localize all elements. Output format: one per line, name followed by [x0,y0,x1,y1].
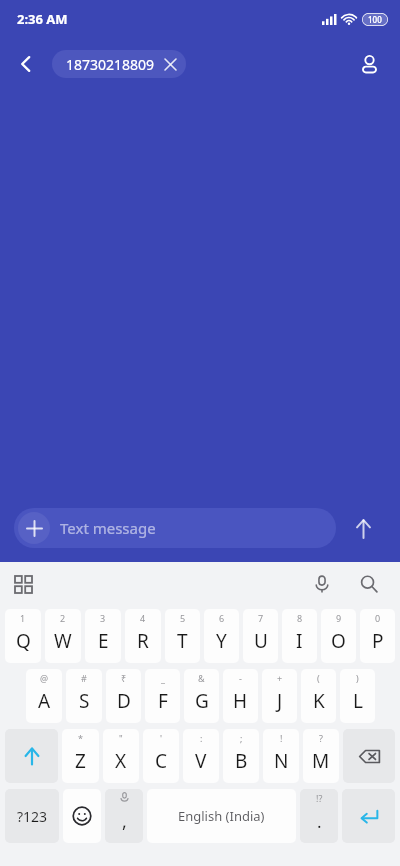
staticText: D [117,688,131,714]
staticText: O [331,628,346,654]
staticText: 7 [258,612,264,624]
button[interactable]: Space [147,789,296,843]
staticText: ; [240,732,243,744]
staticText: 100 [368,14,382,25]
button[interactable]: @ [26,669,62,723]
button[interactable]: Back [6,44,46,84]
staticText: C [155,748,168,774]
staticText: E [98,628,109,654]
staticText: M [312,748,330,774]
staticText: H [233,688,248,714]
button[interactable]: 8 [282,609,317,663]
staticText: * [78,732,83,744]
staticText: Y [216,628,227,654]
staticText: R [137,628,149,654]
staticText: V [195,748,207,774]
button[interactable]: # [66,669,102,723]
button[interactable]: ? [303,729,339,783]
button[interactable]: Enter [342,789,395,843]
staticText: 0 [375,612,381,624]
staticText: F [158,688,168,714]
staticText: K [313,688,325,714]
button[interactable]: 5 [165,609,200,663]
staticText: + [277,672,283,684]
button[interactable]: * [62,729,99,783]
button[interactable]: ) [340,669,375,723]
staticText: W [54,628,72,654]
staticText: @ [40,672,49,684]
staticText: 8 [297,612,303,624]
staticText: B [235,748,248,774]
button[interactable]: , [105,789,143,843]
button[interactable]: - [223,669,258,723]
button[interactable]: _ [145,669,180,723]
button[interactable]: Add attachment [14,508,336,548]
staticText: ₹ [121,672,127,684]
button[interactable]: + [262,669,297,723]
staticText: : [200,732,203,744]
button[interactable]: Symbols [5,789,59,843]
button[interactable]: Backspace [343,729,395,783]
button[interactable]: Search [352,567,386,601]
button[interactable]: ' [143,729,179,783]
staticText: , [122,809,127,834]
staticText: P [372,628,384,654]
staticText: " [119,732,123,744]
button[interactable]: 4 [125,609,161,663]
staticText: English (India) [178,807,265,825]
staticText: Text message [60,518,156,538]
button[interactable]: ! [263,729,299,783]
button[interactable]: Keyboard layouts [6,567,40,601]
button[interactable]: Contact [348,43,390,85]
staticText: N [274,748,289,774]
staticText: X [115,748,127,774]
staticText: _ [161,672,165,684]
staticText: 5 [180,612,186,624]
staticText: 9 [336,612,342,624]
staticText: # [81,672,87,684]
staticText: T [177,628,188,654]
button[interactable]: 18730218809 [52,50,186,78]
button[interactable]: 2 [45,609,81,663]
staticText: 1 [20,612,26,624]
staticText: !? [316,792,323,804]
button[interactable]: " [103,729,139,783]
button[interactable]: ₹ [106,669,141,723]
staticText: ' [160,732,163,744]
staticText: ? [319,732,323,744]
staticText: U [254,628,268,654]
button[interactable]: 9 [321,609,356,663]
staticText: ( [317,672,320,684]
staticText: S [79,688,90,714]
button[interactable]: Shift [5,729,58,783]
staticText: A [38,688,51,714]
button[interactable]: Emoji [63,789,101,843]
button[interactable]: Voice input [305,567,339,601]
button[interactable]: 3 [85,609,121,663]
staticText: I [296,628,303,654]
button[interactable]: 7 [243,609,278,663]
staticText: ?123 [17,807,48,826]
staticText: 6 [219,612,225,624]
button[interactable]: Add attachment [18,512,50,544]
staticText: 4 [140,612,146,624]
button[interactable]: 0 [360,609,395,663]
staticText: G [195,688,209,714]
staticText: 18730218809 [66,55,155,74]
staticText: Q [16,628,31,654]
staticText: L [353,688,363,714]
staticText: & [198,672,205,684]
button[interactable]: ; [223,729,259,783]
button[interactable]: !? [300,789,338,843]
button[interactable]: ( [301,669,336,723]
button[interactable]: Send [340,505,386,551]
staticText: ) [356,672,359,684]
staticText: Z [75,748,86,774]
staticText: 2 [60,612,66,624]
button[interactable]: & [184,669,219,723]
staticText: . [317,810,322,833]
staticText: 3 [100,612,106,624]
button[interactable]: 1 [5,609,41,663]
button[interactable]: : [183,729,219,783]
button[interactable]: 6 [204,609,239,663]
